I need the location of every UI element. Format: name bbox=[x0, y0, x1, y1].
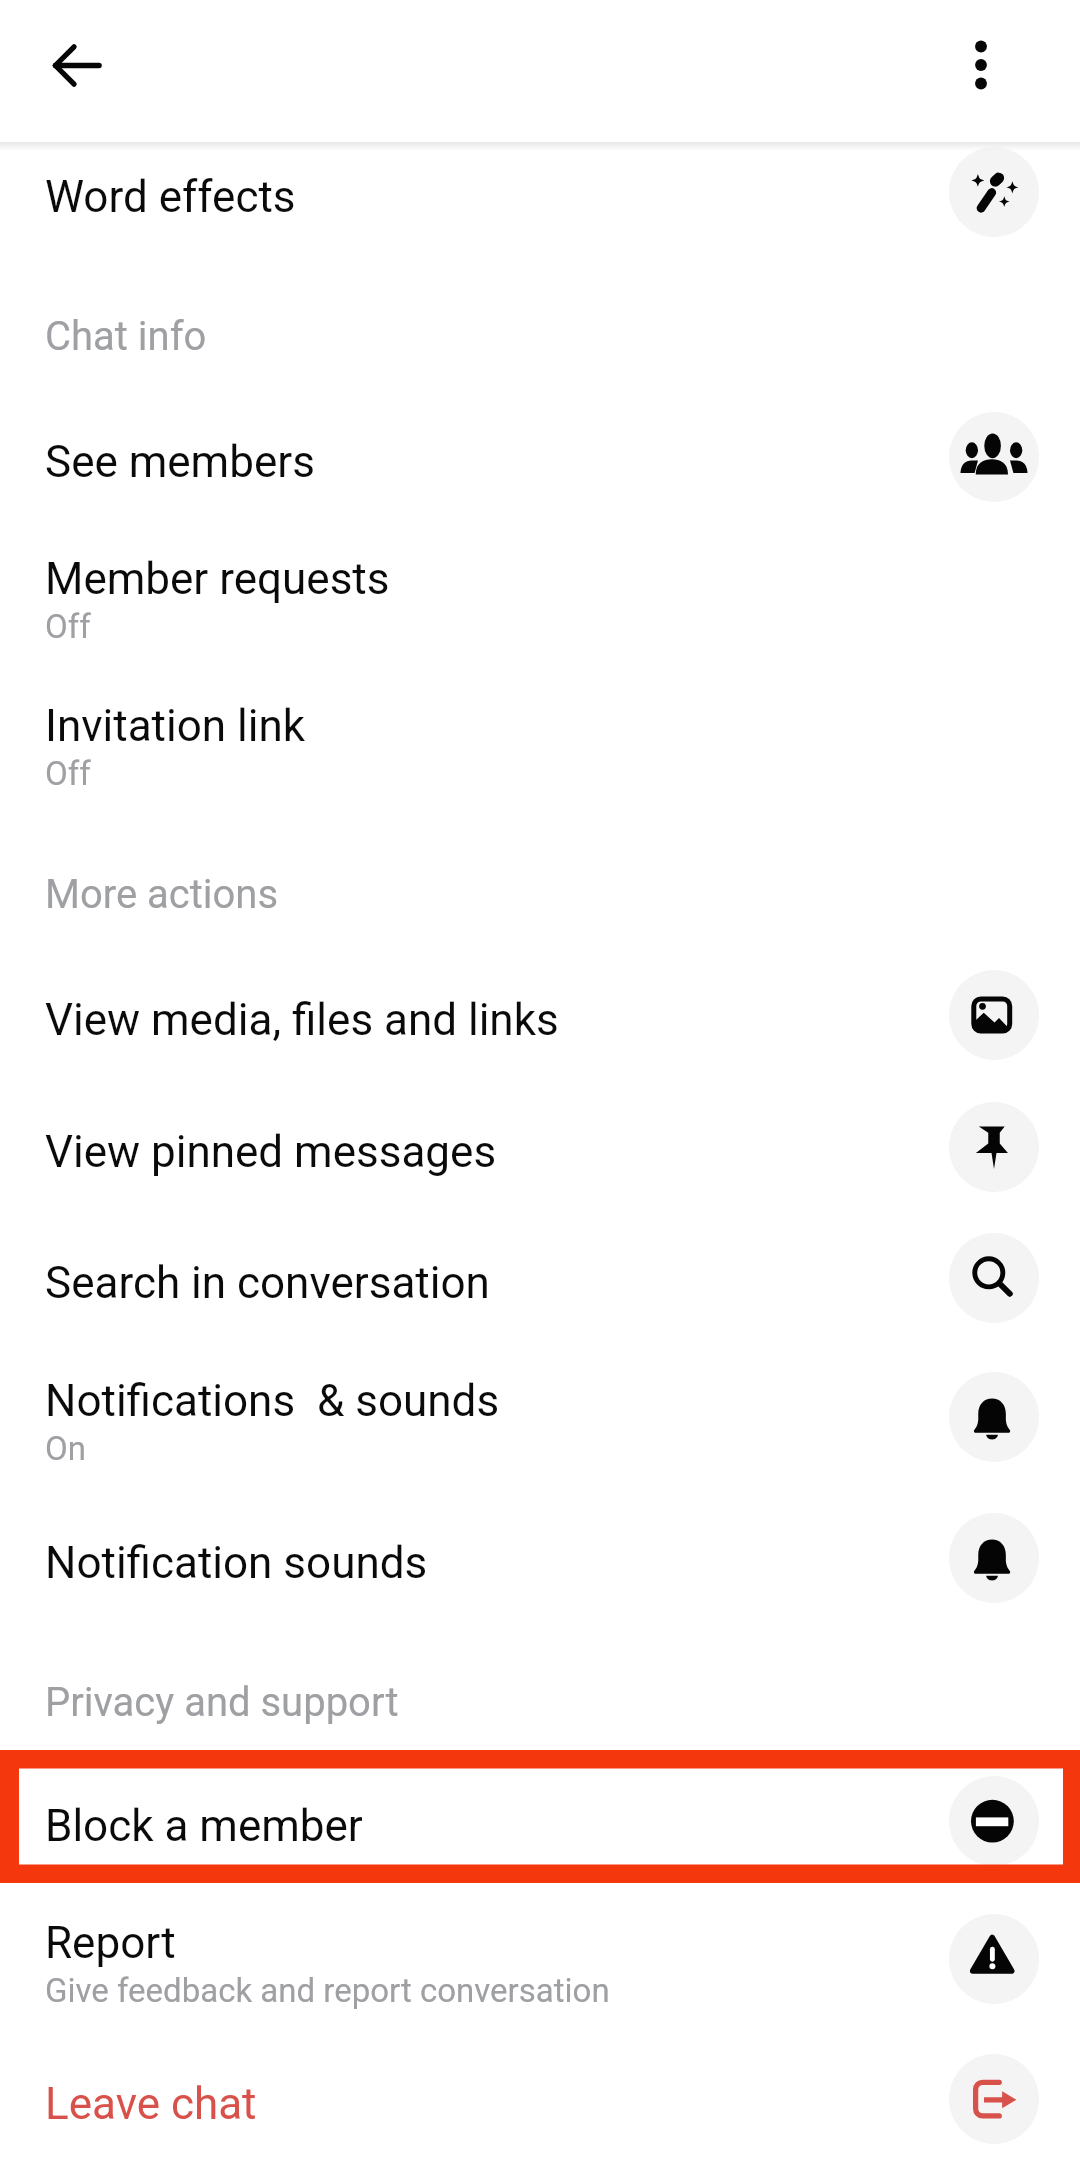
staticText: Word effects bbox=[45, 171, 296, 223]
staticText: Leave chat bbox=[45, 2078, 257, 2130]
button[interactable]: More options bbox=[933, 17, 1029, 113]
button[interactable]: See members bbox=[0, 396, 1080, 527]
button[interactable]: Report bbox=[0, 1888, 1080, 2039]
staticText: Give feedback and report conversation bbox=[45, 1971, 610, 2010]
button[interactable]: Back bbox=[29, 17, 125, 113]
staticText: Off bbox=[45, 754, 91, 793]
staticText: Search in conversation bbox=[45, 1257, 490, 1309]
button[interactable]: Leave chat bbox=[0, 2038, 1080, 2164]
button[interactable]: View pinned messages bbox=[0, 1086, 1080, 1217]
staticText: View pinned messages bbox=[45, 1126, 497, 1178]
staticText: See members bbox=[45, 436, 315, 488]
staticText: View media, files and links bbox=[45, 994, 559, 1046]
staticText: Notifications & sounds bbox=[45, 1375, 500, 1427]
button[interactable]: Block a member bbox=[0, 1760, 1080, 1891]
staticText: On bbox=[45, 1429, 86, 1468]
button[interactable]: View media, files and links bbox=[0, 954, 1080, 1085]
staticText: Off bbox=[45, 607, 91, 646]
staticText: Notification sounds bbox=[45, 1537, 428, 1589]
staticText: More actions bbox=[45, 871, 279, 918]
button[interactable]: Member requests bbox=[0, 524, 1080, 675]
staticText: Privacy and support bbox=[45, 1679, 399, 1726]
button[interactable]: Notification sounds bbox=[0, 1497, 1080, 1628]
button[interactable]: Search in conversation bbox=[0, 1217, 1080, 1348]
staticText: Block a member bbox=[45, 1800, 363, 1852]
staticText: Report bbox=[45, 1917, 176, 1969]
button[interactable]: Word effects bbox=[0, 131, 1080, 262]
button[interactable]: Invitation link bbox=[0, 671, 1080, 822]
staticText: Chat info bbox=[45, 313, 207, 360]
staticText: Invitation link bbox=[45, 700, 306, 752]
button[interactable]: Notifications & sounds bbox=[0, 1346, 1080, 1497]
staticText: Member requests bbox=[45, 553, 390, 605]
